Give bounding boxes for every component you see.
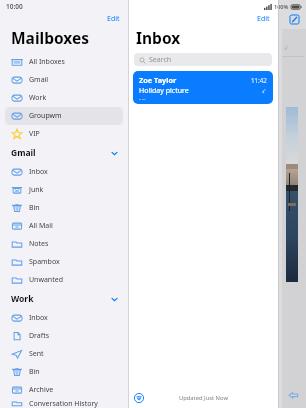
button[interactable]: Edit (249, 13, 278, 25)
button[interactable]: Work (0, 289, 128, 309)
staticText: Search (149, 55, 172, 65)
staticText: Zoe Taylor (139, 75, 177, 85)
button[interactable]: Conversation History (5, 399, 123, 408)
staticText: Work (11, 293, 34, 305)
staticText: Inbox (29, 167, 48, 177)
staticText: Spambox (29, 257, 60, 267)
button[interactable]: Compose (287, 12, 302, 27)
button[interactable]: Zoe Taylor (133, 71, 273, 104)
button[interactable]: Unwanted (5, 271, 123, 289)
staticText: Updated Just Now (179, 394, 228, 402)
button[interactable]: Bin (5, 199, 123, 217)
staticText: VIP (29, 129, 40, 139)
button[interactable]: Groupwm (5, 107, 123, 125)
button[interactable]: Gmail (0, 143, 128, 163)
staticText: Drafts (29, 331, 50, 341)
button[interactable]: Inbox (5, 163, 123, 181)
staticText: Work (29, 93, 47, 103)
button[interactable]: Junk (5, 181, 123, 199)
staticText: All Inboxes (29, 57, 65, 67)
staticText: Edit (257, 14, 270, 24)
button[interactable]: Inbox (5, 309, 123, 327)
staticText: Bin (29, 203, 40, 213)
staticText: Unwanted (29, 275, 63, 285)
staticText: 11:42 (251, 76, 267, 84)
button[interactable]: Search (134, 53, 272, 66)
staticText: Notes (29, 239, 49, 249)
button[interactable]: Archive (5, 381, 123, 399)
button[interactable]: Spambox (5, 253, 123, 271)
button[interactable]: All Mail (5, 217, 123, 235)
staticText: Sent (29, 349, 44, 359)
staticText: Groupwm (29, 111, 62, 121)
staticText: Gmail (11, 147, 36, 159)
staticText: Bin (29, 367, 40, 377)
button[interactable]: Notes (5, 235, 123, 253)
button[interactable]: Gmail (5, 71, 123, 89)
button[interactable]: Reply (286, 388, 300, 402)
staticText: Inbox (29, 313, 48, 323)
button[interactable]: All Inboxes (5, 53, 123, 71)
button[interactable]: Filter messages (132, 391, 146, 405)
button[interactable]: Edit (99, 13, 128, 25)
staticText: 100% (274, 3, 289, 10)
staticText: All Mail (29, 221, 53, 231)
staticText: 10:00 (6, 2, 23, 11)
staticText: Junk (29, 185, 44, 195)
button[interactable]: Sent (5, 345, 123, 363)
button[interactable]: VIP (5, 125, 123, 143)
staticText: Inbox (136, 27, 181, 48)
staticText: Edit (107, 14, 120, 24)
staticText: Mailboxes (11, 27, 90, 48)
staticText: Gmail (29, 75, 49, 85)
staticText: Conversation History (29, 399, 98, 408)
staticText: Holiday picture (139, 86, 189, 96)
button[interactable]: Work (5, 89, 123, 107)
staticText: Hi (139, 97, 146, 100)
button[interactable]: Bin (5, 363, 123, 381)
staticText: Archive (29, 385, 54, 395)
button[interactable]: Drafts (5, 327, 123, 345)
